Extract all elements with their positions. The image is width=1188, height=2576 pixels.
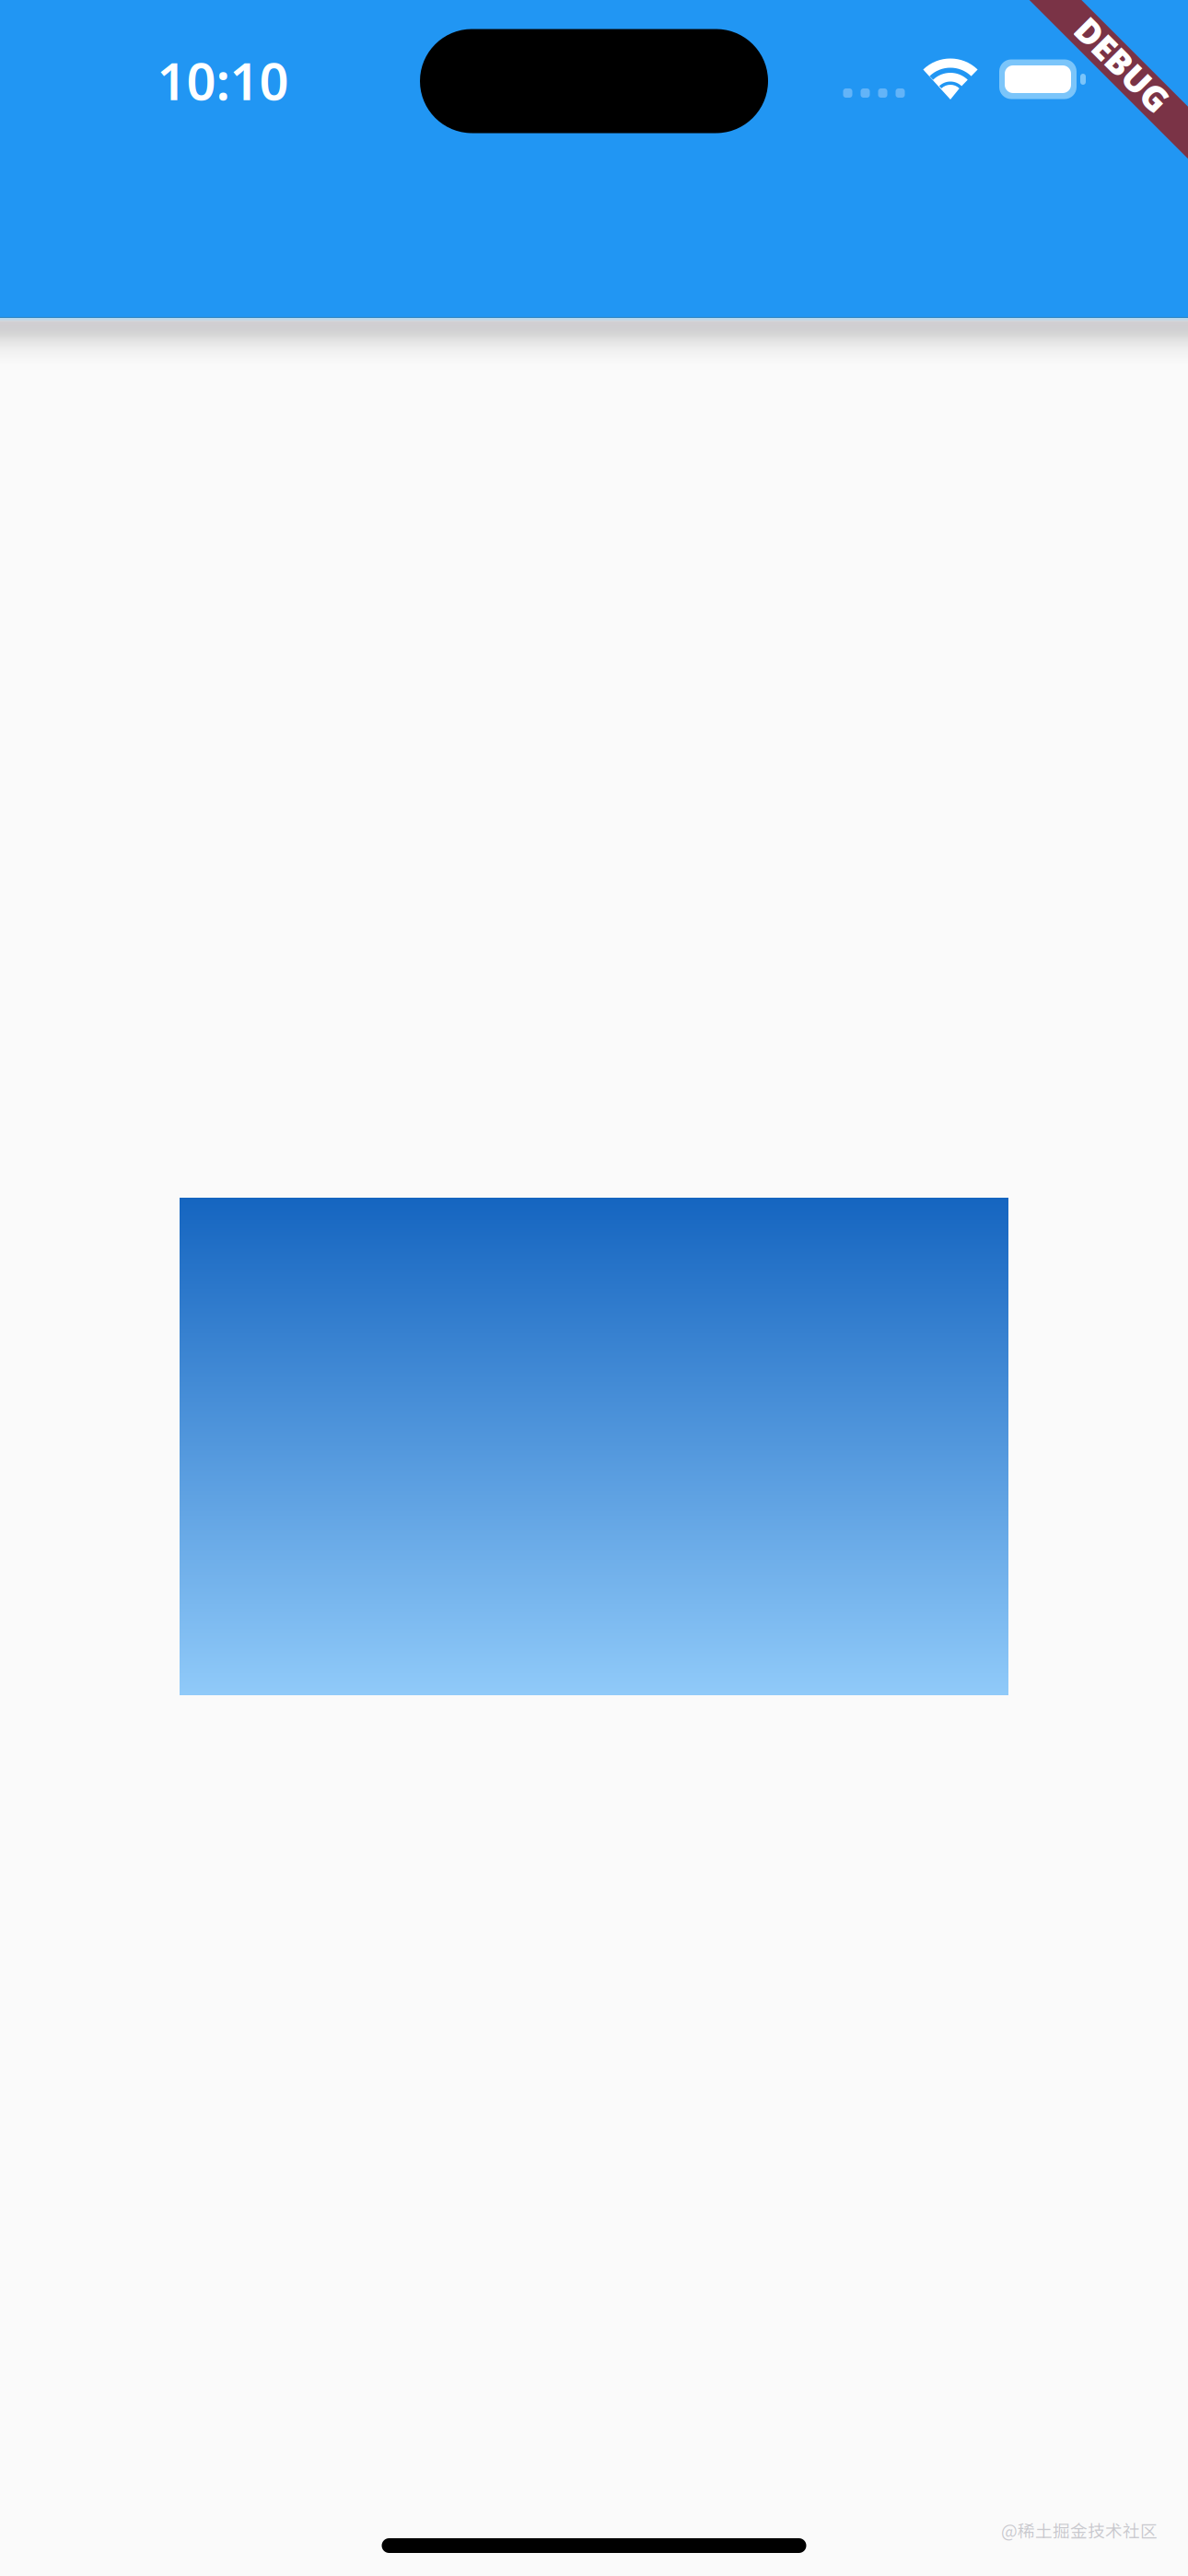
staticText: DEBUG (1064, 42, 1182, 87)
staticText: @稀土掘金技术社区 (1001, 2517, 1158, 2542)
staticText: 10:10 (157, 46, 289, 114)
